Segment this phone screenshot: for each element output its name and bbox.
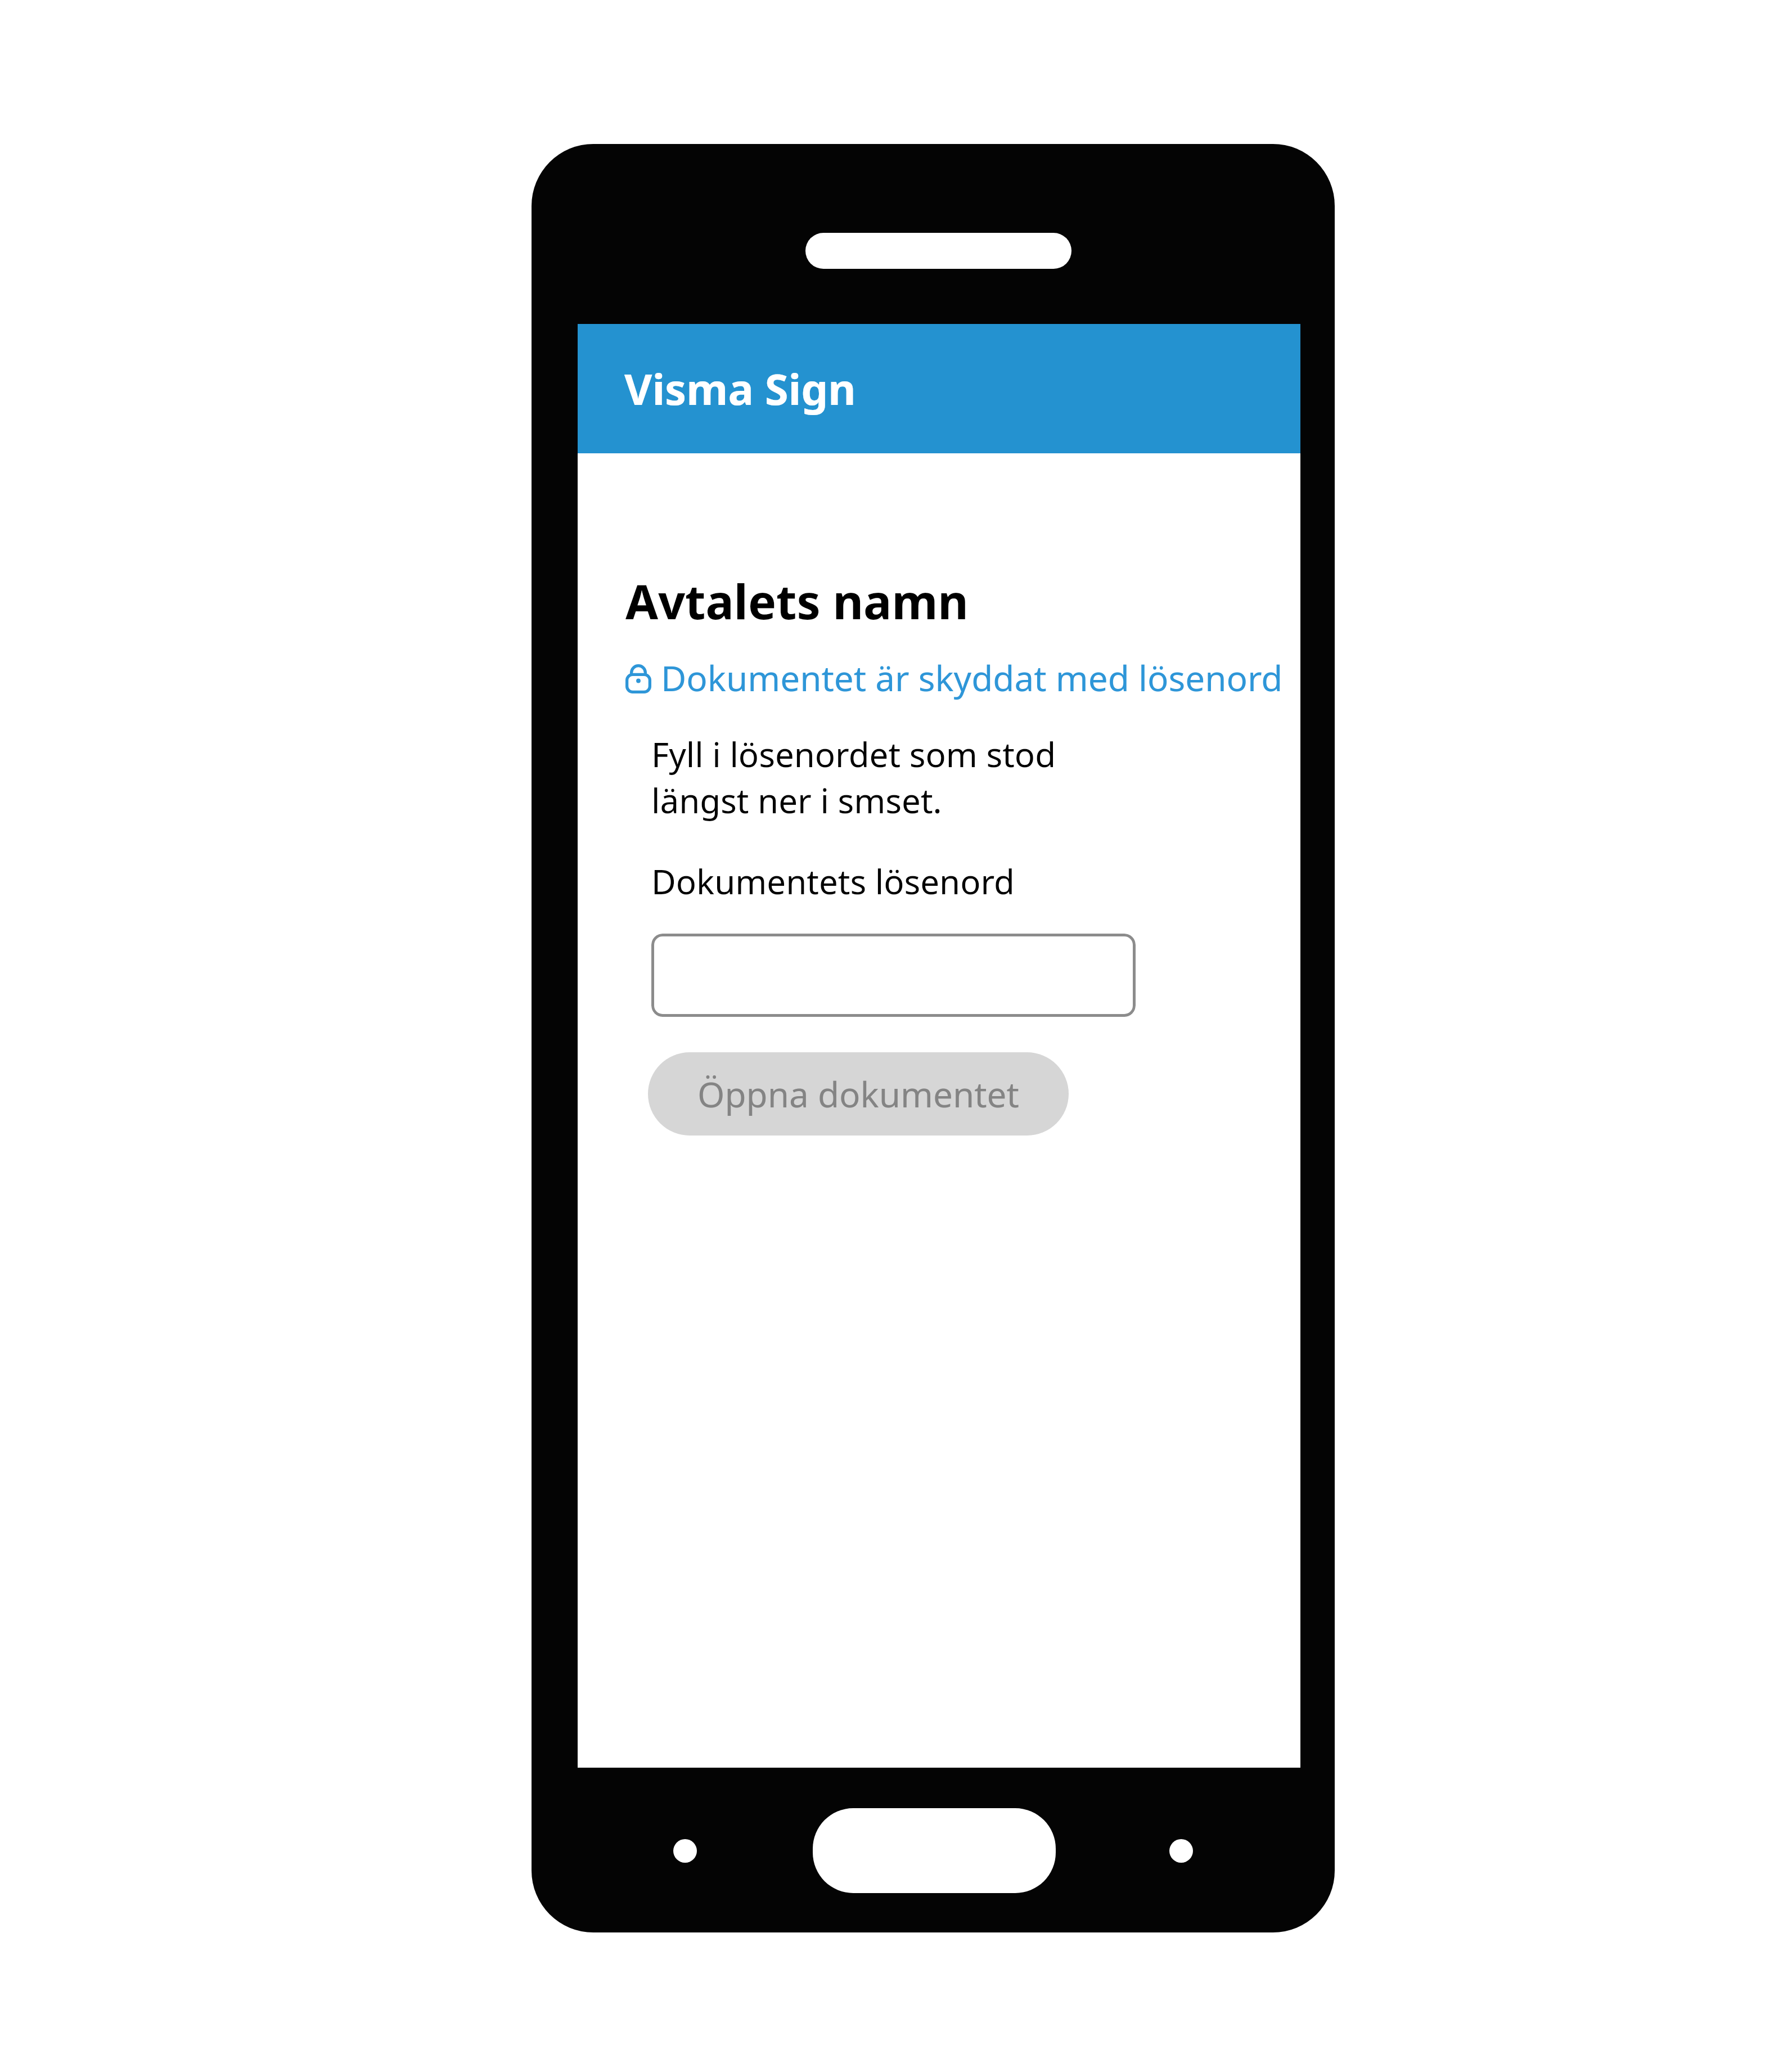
button[interactable]: Visma Sign bbox=[578, 324, 1300, 453]
staticText: Dokumentets lösenord bbox=[651, 858, 1015, 904]
staticText: Öppna dokumentet bbox=[697, 1070, 1019, 1118]
button[interactable]: Öppna dokumentet bbox=[648, 1052, 1069, 1136]
staticText: Visma Sign bbox=[624, 359, 856, 418]
button[interactable]: Dokumentets lösenord bbox=[651, 934, 1136, 1017]
button[interactable]: Home bbox=[813, 1808, 1056, 1893]
button[interactable]: Dokumentet är skyddat med lösenord bbox=[625, 654, 1283, 701]
staticText: Dokumentet är skyddat med lösenord bbox=[661, 654, 1283, 701]
staticText: Avtalets namn bbox=[625, 569, 969, 633]
staticText: Fyll i lösenordet som stod längst ner i … bbox=[651, 731, 1146, 823]
